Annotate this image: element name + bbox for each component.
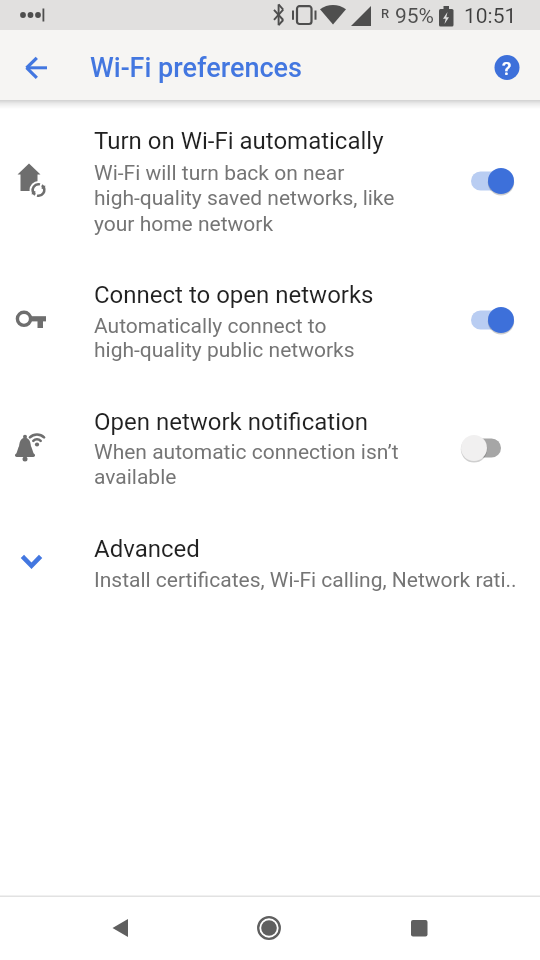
staticText: your home network [94,212,274,237]
button[interactable] [462,163,518,199]
button[interactable] [0,109,540,252]
button[interactable] [90,898,150,958]
button[interactable] [0,252,540,389]
button[interactable] [462,302,518,338]
staticText: 95% [395,4,434,29]
staticText: ? [502,57,512,79]
staticText: R [381,6,390,21]
staticText: Connect to open networks [94,281,374,309]
button[interactable] [389,898,449,958]
button[interactable] [0,389,540,516]
button[interactable] [14,46,58,90]
staticText: high-quality public networks [94,338,355,363]
staticText: Wi-Fi will turn back on near [94,161,345,186]
staticText: Advanced [94,535,200,563]
staticText: available [94,465,177,490]
button[interactable] [0,516,540,610]
button[interactable] [452,430,508,466]
staticText: Turn on Wi-Fi automatically [94,127,384,155]
staticText: high-quality saved networks, like [94,186,395,211]
button[interactable] [239,898,299,958]
staticText: Wi-Fi preferences [90,52,303,84]
staticText: Open network notification [94,408,368,436]
staticText: 10:51 [464,4,517,29]
staticText: Install certificates, Wi-Fi calling, Net… [94,568,517,593]
staticText: Automatically connect to [94,314,327,339]
button[interactable] [485,46,529,90]
staticText: When automatic connection isn’t [94,440,399,465]
